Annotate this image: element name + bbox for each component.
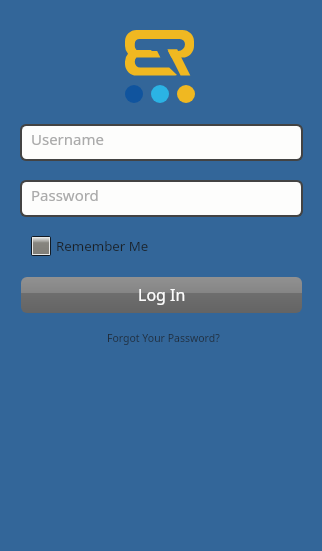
staticText: Log In bbox=[138, 284, 186, 306]
button[interactable]: Password bbox=[22, 182, 301, 215]
button[interactable]: Remember Me bbox=[31, 236, 149, 256]
button[interactable]: Log In bbox=[21, 277, 302, 313]
staticText: Password bbox=[31, 185, 99, 205]
staticText: Forgot Your Password? bbox=[107, 331, 220, 345]
staticText: Username bbox=[31, 129, 104, 149]
button[interactable]: Forgot Your Password? bbox=[107, 331, 220, 345]
button[interactable]: Username bbox=[22, 126, 301, 159]
staticText: Remember Me bbox=[56, 237, 149, 255]
